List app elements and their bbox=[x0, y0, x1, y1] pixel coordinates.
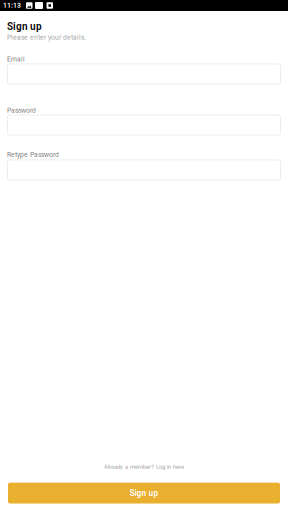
staticText: 11:13 bbox=[3, 2, 21, 9]
staticText: Retype Password bbox=[7, 151, 59, 159]
staticText: Password bbox=[7, 107, 36, 114]
button[interactable]: Already a member? Log in here bbox=[7, 463, 281, 470]
staticText: Sign up bbox=[7, 21, 42, 32]
staticText: Email bbox=[7, 55, 25, 63]
staticText: Already a member? Log in here bbox=[104, 463, 184, 470]
button[interactable]: Sign up bbox=[7, 483, 281, 503]
staticText: Sign up bbox=[129, 488, 158, 498]
staticText: Please enter your details. bbox=[7, 34, 86, 41]
